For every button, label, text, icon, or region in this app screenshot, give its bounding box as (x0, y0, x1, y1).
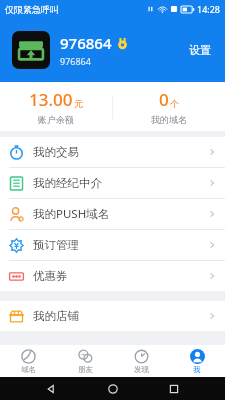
staticText: 我的域名 (151, 114, 187, 125)
button[interactable] (12, 31, 50, 69)
staticText: 账户余额 (38, 114, 74, 125)
button[interactable]: 我的交易 (0, 137, 225, 167)
button[interactable]: Back (40, 378, 62, 400)
staticText: 发现 (134, 365, 149, 374)
staticText: 设置 (189, 43, 211, 57)
staticText: 976864 (60, 55, 91, 67)
staticText: 13.00 (29, 88, 73, 111)
staticText: 优惠券 (33, 269, 68, 283)
button[interactable]: 预订管理 (0, 230, 225, 260)
staticText: 0 (159, 88, 169, 111)
button[interactable]: 0 (113, 82, 225, 131)
button[interactable]: 我的PUSH域名 (0, 199, 225, 229)
staticText: 我 (193, 365, 201, 374)
button[interactable]: 优惠券 (0, 261, 225, 291)
staticText: 我的PUSH域名 (33, 206, 110, 222)
staticText: 我的交易 (33, 145, 79, 159)
staticText: 我的经纪中介 (33, 176, 102, 190)
button[interactable]: 设置 (185, 39, 215, 61)
button[interactable]: 朋友 (57, 345, 113, 377)
staticText: 14:28 (197, 3, 221, 15)
staticText: 仅限紧急呼叫 (5, 4, 59, 15)
staticText: 个 (170, 98, 179, 109)
staticText: 元 (74, 98, 83, 109)
button[interactable]: 13.00 (0, 82, 112, 131)
button[interactable]: 域名 (0, 345, 57, 377)
button[interactable]: Home (102, 378, 124, 400)
button[interactable]: 发现 (113, 345, 169, 377)
staticText: 我的店铺 (33, 309, 79, 323)
button[interactable]: 我 (169, 345, 225, 377)
staticText: 预订管理 (33, 238, 79, 252)
button[interactable]: Recents (163, 378, 185, 400)
button[interactable]: 我的经纪中介 (0, 168, 225, 198)
staticText: 域名 (21, 365, 36, 374)
button[interactable]: 我的店铺 (0, 301, 225, 331)
staticText: 976864 (60, 33, 112, 53)
staticText: 朋友 (78, 365, 93, 374)
